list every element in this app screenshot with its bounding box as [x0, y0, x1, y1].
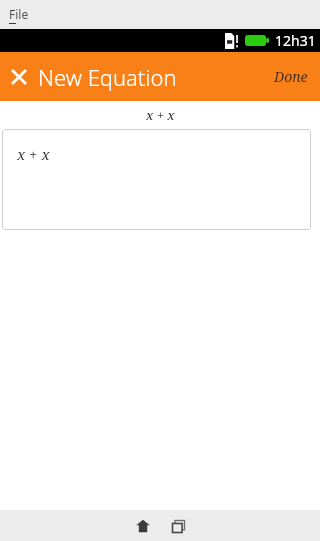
button[interactable]: File	[7, 4, 31, 26]
button[interactable]: Recent apps	[163, 511, 193, 541]
other: Close	[8, 66, 30, 88]
staticText: New Equation	[38, 62, 177, 92]
button[interactable]: x + x	[2, 129, 311, 230]
button[interactable]: Home	[128, 511, 158, 541]
staticText: File	[9, 6, 29, 22]
staticText: x + x	[146, 106, 175, 124]
staticText: x + x	[17, 144, 50, 164]
button[interactable]: Close	[8, 62, 181, 92]
staticText: Done	[274, 67, 308, 86]
button[interactable]: Done	[270, 61, 312, 92]
staticText: 12h31	[275, 31, 316, 50]
